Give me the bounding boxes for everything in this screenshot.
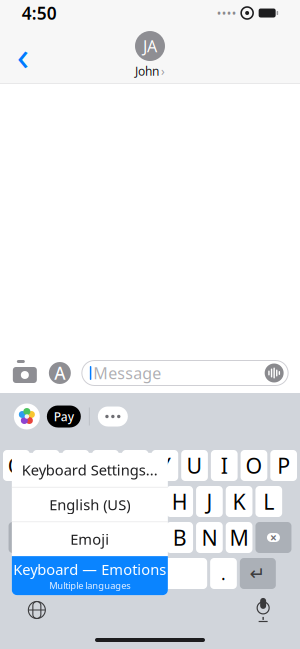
button[interactable]: T — [122, 450, 148, 481]
staticText: JA — [143, 35, 157, 57]
staticText: S — [55, 487, 67, 516]
button[interactable]: English (US) — [12, 487, 168, 521]
staticText: John — [135, 63, 159, 79]
staticText: A — [54, 361, 65, 384]
staticText: › — [161, 63, 165, 79]
staticText: K — [233, 487, 246, 516]
button[interactable]: Back — [6, 35, 40, 75]
staticText: Multiple languages — [49, 579, 130, 591]
staticText: U — [187, 451, 203, 480]
staticText: •••• — [217, 5, 237, 21]
button[interactable]: C — [107, 522, 134, 553]
button[interactable]: More apps — [95, 399, 131, 433]
staticText: Y — [159, 451, 171, 480]
staticText: Pay — [54, 408, 74, 424]
staticText: Keyboard Settings... — [22, 460, 158, 480]
button[interactable]: F — [107, 486, 134, 517]
staticText: Q — [8, 451, 25, 480]
button[interactable]: Keyboard Settings... — [12, 453, 168, 487]
staticText: 4:50 — [22, 1, 57, 24]
button[interactable]: . — [210, 558, 237, 589]
staticText: B — [173, 523, 187, 552]
button[interactable]: D — [77, 486, 104, 517]
staticText: O — [245, 451, 262, 480]
button[interactable]: J — [196, 486, 223, 517]
staticText: P — [277, 451, 290, 480]
staticText: Emoji — [70, 529, 109, 549]
button[interactable]: I — [211, 450, 238, 481]
button[interactable]: return — [240, 558, 276, 589]
button[interactable]: Dictation — [248, 595, 278, 625]
button[interactable]: Apple Pay — [44, 399, 84, 433]
button[interactable]: L — [255, 486, 282, 517]
button[interactable]: N — [196, 522, 223, 553]
staticText: X — [84, 523, 97, 552]
button[interactable]: E — [62, 450, 89, 481]
staticText: T — [129, 451, 141, 480]
staticText: E — [70, 451, 82, 480]
button[interactable]: Q — [3, 450, 30, 481]
staticText: F — [115, 487, 126, 516]
staticText: N — [201, 523, 217, 552]
button[interactable]: M — [226, 522, 252, 553]
staticText: 123 — [30, 565, 54, 582]
button[interactable]: Apps — [48, 361, 72, 385]
button[interactable]: X — [77, 522, 104, 553]
staticText: H — [172, 487, 188, 516]
button[interactable]: Next keyboard — [22, 595, 52, 625]
button[interactable]: P — [270, 450, 297, 481]
staticText: W — [36, 451, 56, 480]
button[interactable]: B — [166, 522, 193, 553]
staticText: × — [270, 529, 277, 545]
staticText: English (US) — [49, 495, 130, 514]
button[interactable]: Delete — [255, 522, 291, 553]
staticText: Message — [93, 362, 161, 384]
button[interactable]: Z — [48, 522, 74, 553]
button[interactable]: JA — [125, 29, 175, 81]
button[interactable]: W — [33, 450, 59, 481]
staticText: D — [83, 487, 99, 516]
staticText: ↵ — [250, 563, 266, 584]
button[interactable]: Shift — [9, 522, 45, 553]
staticText: J — [206, 487, 212, 516]
button[interactable]: K — [226, 486, 252, 517]
button[interactable]: O — [241, 450, 267, 481]
button[interactable]: space — [63, 558, 207, 589]
staticText: R — [99, 451, 112, 480]
button[interactable]: Camera — [12, 360, 38, 386]
button[interactable]: Keyboard — Emotions — [12, 556, 168, 595]
button[interactable]: Photos — [10, 399, 44, 433]
button[interactable]: S — [48, 486, 74, 517]
staticText: L — [263, 487, 274, 516]
staticText: I — [221, 451, 228, 480]
button[interactable]: Y — [151, 450, 178, 481]
staticText: M — [230, 523, 249, 552]
button[interactable]: Numbers — [24, 558, 60, 589]
staticText: ‹ — [17, 28, 29, 81]
button[interactable]: H — [166, 486, 193, 517]
button[interactable]: Emoji — [12, 522, 168, 556]
staticText: Keyboard — Emotions — [13, 560, 166, 579]
button[interactable]: R — [92, 450, 119, 481]
staticText: . — [221, 562, 226, 585]
button[interactable]: U — [181, 450, 208, 481]
